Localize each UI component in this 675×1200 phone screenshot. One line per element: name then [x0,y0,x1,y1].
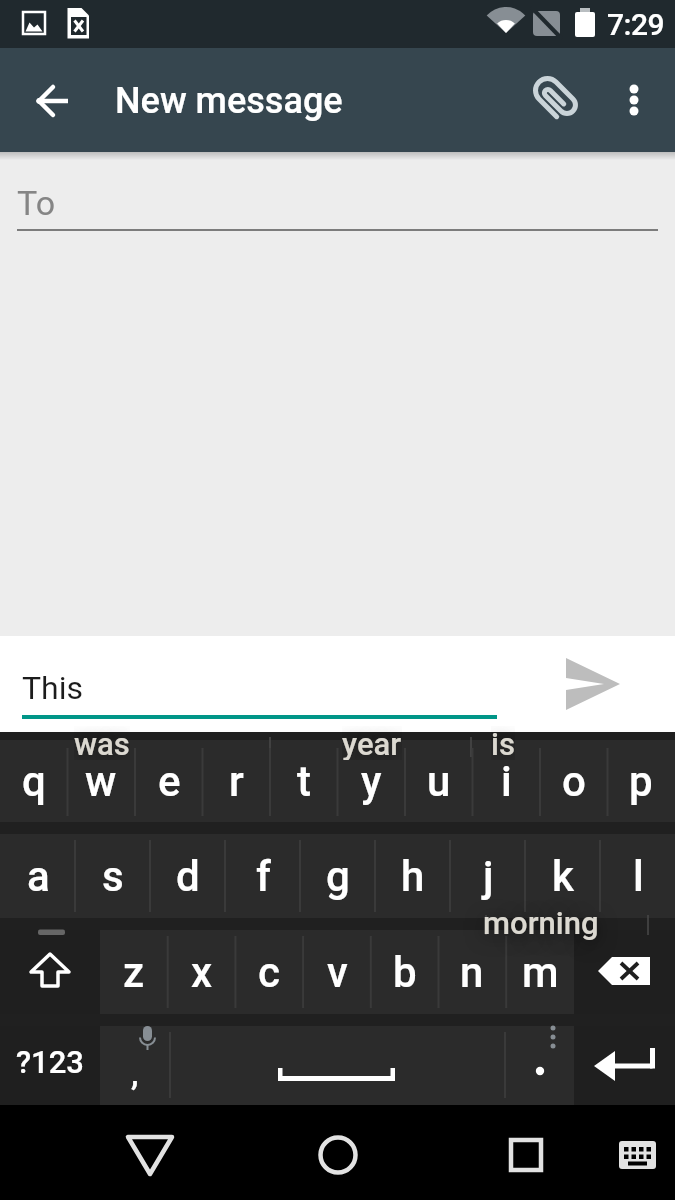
button[interactable]: ?123 [1,1026,99,1098]
button[interactable]: j [452,834,524,918]
button[interactable]: , [102,1042,168,1104]
button[interactable]: n [440,930,504,1014]
button[interactable] [303,1130,373,1185]
button[interactable]: h [377,834,449,918]
button[interactable]: m [508,930,572,1014]
button[interactable]: morning [471,905,611,941]
staticText: u [427,757,451,806]
button[interactable]: r [203,740,269,822]
button[interactable]: z [102,930,166,1014]
staticText: l [633,852,644,901]
button[interactable] [578,1028,672,1102]
staticText: p [629,757,653,806]
staticText: r [229,757,244,806]
button[interactable]: t [271,740,337,822]
staticText: was [74,726,130,760]
staticText: j [483,852,494,901]
button[interactable]: f [227,834,299,918]
staticText: year [342,726,402,760]
staticText: e [158,757,181,806]
button[interactable] [578,932,672,1012]
button[interactable]: y [338,740,404,822]
button[interactable] [174,1028,502,1102]
button[interactable]: g [302,834,374,918]
button[interactable]: w [68,740,134,822]
staticText: morning [483,905,599,941]
button[interactable]: d [152,834,224,918]
staticText: v [327,948,348,997]
staticText: New message [115,80,343,122]
staticText: h [401,852,425,901]
button[interactable]: is [443,726,563,760]
button[interactable] [507,1028,571,1102]
button[interactable]: x [170,930,234,1014]
staticText: m [522,948,559,997]
button[interactable] [548,648,638,720]
button[interactable]: u [406,740,472,822]
button[interactable] [0,640,540,728]
button[interactable]: i [473,740,539,822]
button[interactable] [520,64,592,136]
staticText: f [256,852,271,901]
staticText: To [17,183,56,223]
staticText: d [176,852,200,901]
button[interactable]: v [305,930,369,1014]
button[interactable] [20,66,90,136]
button[interactable]: s [77,834,149,918]
button[interactable]: year [312,726,432,760]
button[interactable]: q [1,740,67,822]
button[interactable] [115,1130,185,1185]
button[interactable] [604,64,664,136]
button[interactable]: k [527,834,599,918]
staticText: s [102,852,124,901]
button[interactable]: a [2,834,74,918]
staticText: q [22,757,46,806]
staticText: z [123,948,145,997]
button[interactable] [0,160,675,240]
staticText: o [562,757,586,806]
staticText: g [326,852,350,901]
button[interactable]: e [136,740,202,822]
staticText: b [393,948,417,997]
staticText: a [27,852,50,901]
button[interactable]: l [602,834,674,918]
staticText: w [85,757,117,806]
staticText: x [191,948,213,997]
button[interactable]: was [42,726,162,760]
staticText: ?123 [16,1044,84,1080]
staticText: is [491,726,515,760]
staticText: This [22,669,84,707]
staticText: y [361,757,382,806]
button[interactable] [604,1130,674,1185]
staticText: , [131,1053,139,1093]
staticText: c [258,948,281,997]
staticText: n [460,948,484,997]
button[interactable] [491,1130,561,1185]
button[interactable]: p [608,740,674,822]
button[interactable] [4,932,98,1012]
staticText: 7:29 [607,7,665,42]
button[interactable]: b [373,930,437,1014]
button[interactable]: o [541,740,607,822]
button[interactable]: c [237,930,301,1014]
staticText: i [501,757,512,806]
staticText: t [297,757,311,806]
staticText: k [552,852,574,901]
